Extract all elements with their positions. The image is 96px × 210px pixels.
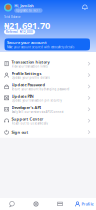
button[interactable]: Profile photo <box>4 3 12 12</box>
staticText: Easily Sell our services via API/Connect <box>12 110 64 114</box>
button[interactable]: Sign out <box>0 126 96 138</box>
staticText: Referral ₦12,000 <box>6 30 33 34</box>
staticText: Secure your account by changing password <box>12 87 70 91</box>
staticText: Upgrade to Tier 1 <box>16 9 41 12</box>
button[interactable]: Secure your account <box>4 38 90 50</box>
staticText: Update Password <box>12 82 46 87</box>
button[interactable]: Update PIN <box>0 92 96 104</box>
staticText: Sign out <box>12 129 29 135</box>
button[interactable]: Upgrade to Tier 1 <box>14 8 43 13</box>
staticText: Profile Settings <box>12 71 42 76</box>
button[interactable]: Developer's API <box>0 104 96 115</box>
button[interactable]: Messages <box>0 198 24 210</box>
button[interactable]: Notifications <box>82 4 88 10</box>
staticText: Hi, Jamilah <box>14 3 34 8</box>
button[interactable]: Transaction history <box>0 58 96 69</box>
button[interactable]: Profile <box>72 198 96 210</box>
button[interactable]: Support Center <box>0 115 96 126</box>
staticText: Update PIN <box>12 93 34 99</box>
staticText: Secure your account <box>7 40 47 45</box>
staticText: Reach out to us seamlessly <box>12 122 48 125</box>
staticText: Total Balance <box>4 15 21 19</box>
button[interactable]: Referral ₦12,000 <box>4 29 35 34</box>
staticText: Developer's API <box>12 105 41 110</box>
staticText: ₦21,691.70 <box>4 19 50 32</box>
staticText: View your transaction limits <box>12 65 48 68</box>
button[interactable]: Update Password <box>0 81 96 92</box>
button[interactable]: Settings <box>24 198 48 210</box>
staticText: Profile <box>81 201 93 207</box>
staticText: Transaction history <box>12 59 50 65</box>
staticText: Update your transaction pin securely <box>12 99 62 102</box>
staticText: Make your account secured with extra saf… <box>7 45 74 49</box>
staticText: Update your profile details <box>12 76 50 79</box>
button[interactable]: Cards <box>48 198 72 210</box>
button[interactable]: Profile Settings <box>0 69 96 81</box>
staticText: Support Center <box>12 116 44 122</box>
